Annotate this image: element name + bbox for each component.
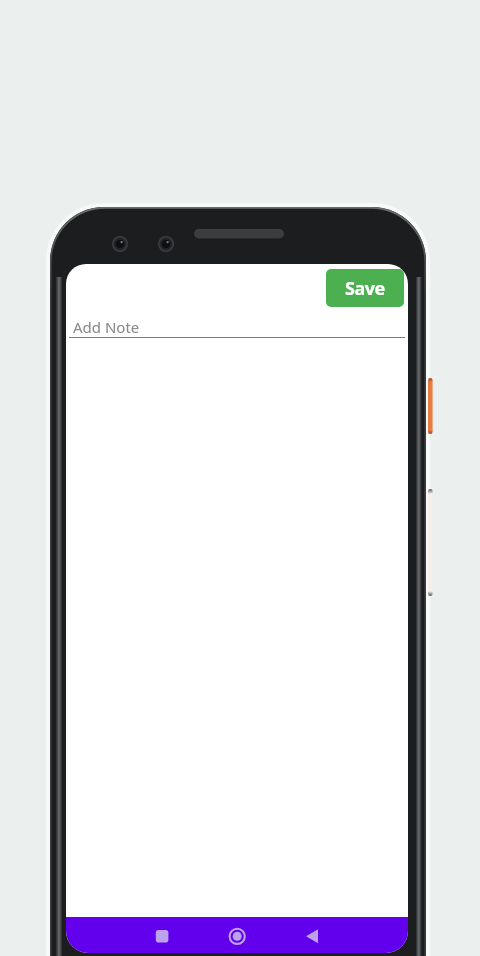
button[interactable]: Save	[326, 269, 404, 307]
button[interactable]: Add Note	[69, 309, 405, 338]
button[interactable]	[213, 917, 261, 953]
staticText: Add Note	[73, 317, 140, 337]
button[interactable]	[294, 917, 342, 953]
button[interactable]	[138, 917, 186, 953]
staticText: Save	[345, 276, 385, 301]
